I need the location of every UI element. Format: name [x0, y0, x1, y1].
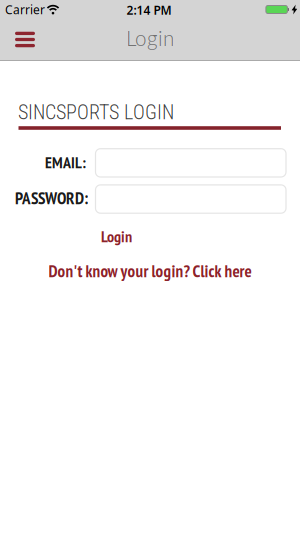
button[interactable]: Login: [101, 226, 132, 247]
button[interactable]: Don't know your login? Click here: [48, 260, 251, 282]
button[interactable]: Menu: [0, 32, 35, 47]
staticText: 2:14 PM: [126, 2, 171, 18]
staticText: Don't know your login? Click here: [48, 260, 251, 282]
staticText: EMAIL:: [45, 152, 86, 173]
button[interactable]: Email: [95, 149, 286, 177]
staticText: PASSWORD:: [15, 187, 88, 209]
staticText: Login: [126, 26, 174, 50]
button[interactable]: Password: [95, 185, 286, 213]
staticText: Carrier: [5, 1, 45, 17]
staticText: Login: [101, 226, 132, 247]
staticText: SINCSPORTS LOGIN: [18, 101, 174, 124]
